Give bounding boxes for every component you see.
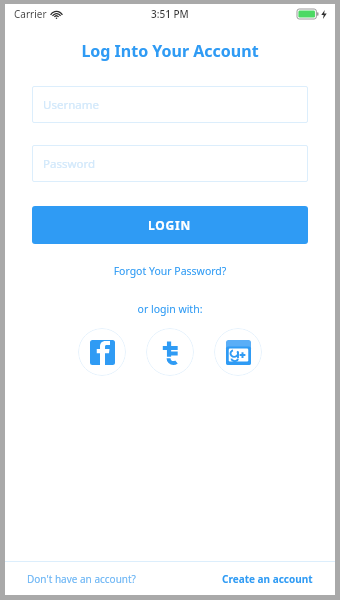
staticText: 3:51 PM <box>151 7 189 21</box>
staticText: Username <box>43 97 99 113</box>
button[interactable]: Forgot Your Password? <box>5 262 335 280</box>
button[interactable]: LOGIN <box>32 206 308 244</box>
staticText: or login with: <box>5 302 335 316</box>
staticText: LOGIN <box>148 217 192 233</box>
button[interactable]: Log in with Google Plus <box>214 328 262 376</box>
staticText: Carrier <box>14 7 47 21</box>
button[interactable]: Don't have an account? <box>27 568 136 590</box>
button[interactable]: Log in with Facebook <box>78 328 126 376</box>
button[interactable]: Password <box>32 145 308 182</box>
staticText: Password <box>43 156 96 172</box>
staticText: Log Into Your Account <box>5 40 335 62</box>
button[interactable]: Log in with Twitter <box>146 328 194 376</box>
button[interactable]: Username <box>32 86 308 123</box>
button[interactable]: Create an account <box>222 568 313 590</box>
